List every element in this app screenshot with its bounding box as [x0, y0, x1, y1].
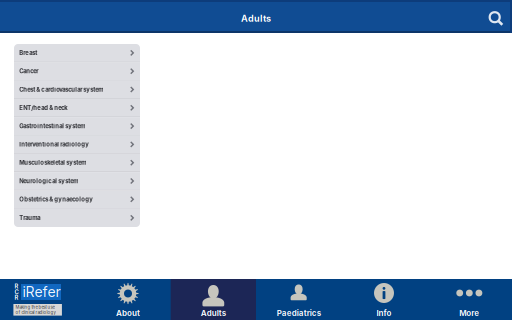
staticText: Trauma [19, 214, 40, 221]
button[interactable]: Trauma [14, 209, 140, 227]
staticText: Interventional radiology [19, 141, 89, 148]
button[interactable]: Paediatrics [256, 279, 341, 320]
staticText: Adults [201, 308, 226, 318]
staticText: ENT/head & neck [19, 104, 67, 111]
staticText: Making the best use of clinical radiolog… [15, 305, 55, 315]
staticText: Obstetrics & gynaecology [19, 196, 93, 203]
staticText: Musculoskeletal system [19, 159, 86, 166]
staticText: Adults [241, 13, 271, 24]
staticText: R [15, 283, 19, 290]
staticText: C [15, 288, 19, 296]
button[interactable]: More [427, 279, 512, 320]
staticText: Info [376, 308, 391, 318]
button[interactable]: ENT/head & neck [14, 99, 140, 117]
button[interactable]: Adults [171, 279, 256, 320]
staticText: Cancer [19, 68, 38, 75]
staticText: R [15, 294, 19, 301]
button[interactable]: Interventional radiology [14, 135, 140, 154]
button[interactable]: Musculoskeletal system [14, 154, 140, 172]
button[interactable]: Search [483, 0, 509, 33]
button[interactable]: Obstetrics & gynaecology [14, 190, 140, 209]
button[interactable]: Gastrointestinal system [14, 117, 140, 135]
staticText: Breast [19, 49, 37, 56]
button[interactable]: About [85, 279, 171, 320]
button[interactable]: Neurological system [14, 172, 140, 190]
button[interactable]: Info [341, 279, 427, 320]
button[interactable]: Chest & cardiovascular system [14, 81, 140, 99]
staticText: More [459, 308, 479, 318]
staticText: Chest & cardiovascular system [19, 86, 103, 93]
staticText: Paediatrics [277, 308, 321, 318]
staticText: Gastrointestinal system [19, 123, 85, 130]
staticText: Neurological system [19, 177, 78, 185]
staticText: About [116, 308, 140, 318]
button[interactable]: Cancer [14, 62, 140, 81]
button[interactable]: iRefer home [0, 279, 85, 320]
staticText: iRefer [23, 283, 60, 300]
button[interactable]: Breast [14, 44, 140, 62]
